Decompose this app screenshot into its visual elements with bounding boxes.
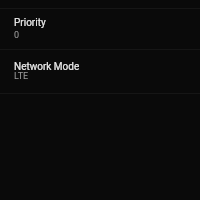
- button[interactable]: Network Mode: [0, 50, 200, 93]
- staticText: 0: [14, 30, 20, 41]
- staticText: Network Mode: [14, 61, 80, 73]
- button[interactable]: Priority: [0, 9, 200, 49]
- staticText: LTE: [14, 71, 29, 82]
- staticText: Priority: [14, 17, 46, 29]
